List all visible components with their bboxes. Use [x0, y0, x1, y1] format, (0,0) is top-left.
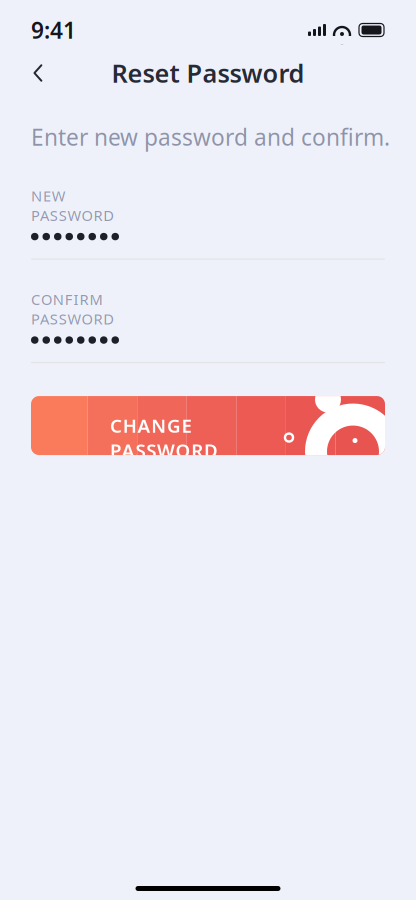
staticText: CHANGE PASSWORD — [110, 413, 306, 438]
button[interactable]: CHANGE PASSWORD — [31, 396, 385, 455]
button[interactable]: Back — [18, 53, 58, 93]
staticText: CONFIRM PASSWORD — [31, 290, 191, 309]
staticText: NEW PASSWORD — [31, 186, 155, 206]
staticText: 9:41 — [31, 15, 76, 45]
staticText: Enter new password and confirm. — [31, 122, 390, 152]
staticText: Reset Password — [111, 56, 304, 90]
